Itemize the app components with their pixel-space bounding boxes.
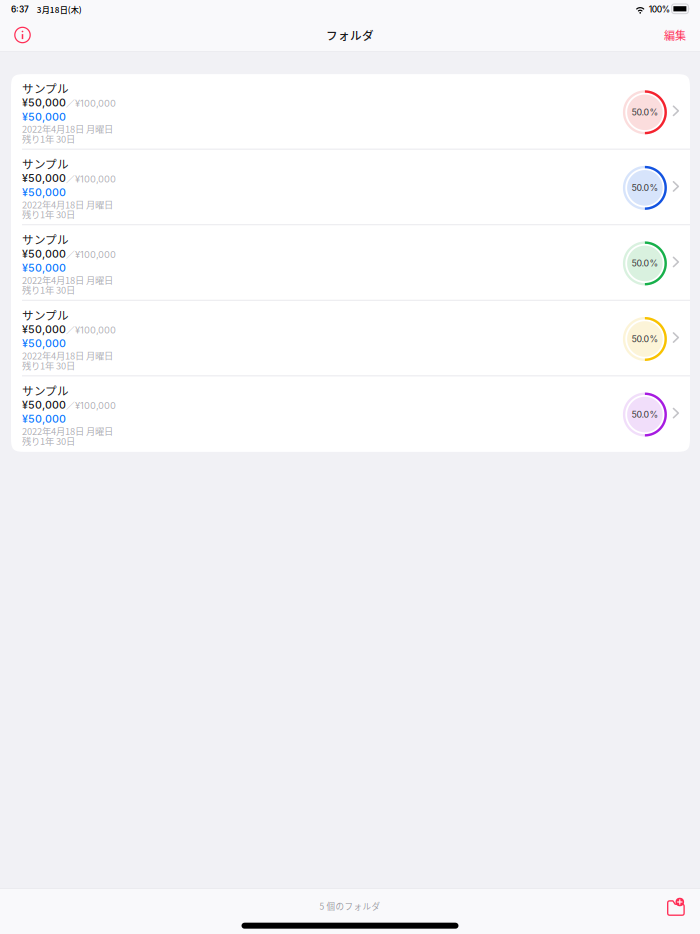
staticText: サンプル	[22, 382, 69, 399]
staticText: ¥50,000	[22, 323, 66, 336]
staticText: 50.0%	[631, 258, 658, 269]
staticText: ¥100,000	[75, 324, 116, 336]
staticText: 編集	[664, 27, 686, 43]
staticText: 残り1年 30日	[22, 359, 75, 372]
staticText: 2022年4月18日 月曜日	[22, 122, 113, 135]
staticText: ¥50,000	[22, 398, 66, 411]
staticText: 50.0%	[631, 334, 658, 344]
staticText: サンプル	[22, 80, 69, 97]
staticText: 6:37	[11, 4, 29, 14]
staticText: ¥100,000	[75, 98, 116, 109]
staticText: ¥100,000	[75, 400, 116, 411]
staticText: ¥100,000	[75, 173, 116, 185]
staticText: ¥50,000	[22, 337, 66, 350]
staticText: 残り1年 30日	[22, 434, 75, 448]
staticText: 50.0%	[631, 107, 658, 118]
staticText: ¥50,000	[22, 412, 66, 425]
staticText: 100%	[649, 4, 670, 15]
staticText: ¥50,000	[22, 261, 66, 274]
staticText: 残り1年 30日	[22, 207, 75, 221]
staticText: ¥50,000	[22, 172, 66, 185]
staticText: サンプル	[22, 155, 69, 172]
staticText: ／	[66, 96, 75, 109]
staticText: サンプル	[22, 231, 69, 248]
button[interactable]: 編集	[658, 22, 692, 48]
staticText: ¥100,000	[75, 249, 116, 260]
staticText: 50.0%	[631, 409, 658, 420]
staticText: 残り1年 30日	[22, 132, 75, 145]
staticText: 2022年4月18日 月曜日	[22, 198, 113, 211]
staticText: 残り1年 30日	[22, 283, 75, 296]
button[interactable]: New Folder	[666, 889, 700, 915]
staticText: ／	[66, 399, 75, 411]
staticText: ¥50,000	[22, 110, 66, 123]
staticText: ／	[66, 247, 75, 260]
staticText: 3月18日(木)	[37, 4, 82, 15]
button[interactable]: Info	[9, 23, 35, 47]
staticText: ¥50,000	[22, 186, 66, 199]
staticText: サンプル	[22, 306, 69, 323]
staticText: フォルダ	[326, 27, 374, 43]
staticText: ¥50,000	[22, 96, 66, 109]
staticText: 2022年4月18日 月曜日	[22, 424, 113, 438]
staticText: 2022年4月18日 月曜日	[22, 349, 113, 362]
staticText: ／	[66, 323, 75, 336]
staticText: 2022年4月18日 月曜日	[22, 273, 113, 287]
staticText: 5 個のフォルダ	[319, 900, 380, 912]
staticText: ／	[66, 172, 75, 185]
staticText: ¥50,000	[22, 247, 66, 260]
staticText: 50.0%	[631, 183, 658, 193]
